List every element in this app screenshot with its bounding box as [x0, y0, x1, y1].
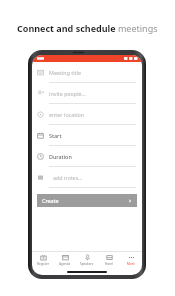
button[interactable]: add notes...: [32, 167, 142, 188]
staticText: Register: [37, 262, 49, 266]
staticText: Agenda: [59, 262, 71, 266]
staticText: enter location: [49, 111, 85, 118]
staticText: add notes...: [53, 174, 83, 181]
staticText: Start: [49, 132, 62, 139]
button[interactable]: Speakers: [76, 252, 98, 268]
staticText: Hotel: [105, 262, 113, 266]
button[interactable]: Start: [32, 125, 142, 146]
button[interactable]: Hotel: [98, 252, 120, 268]
staticText: More: [127, 262, 135, 266]
staticText: Create: [42, 197, 59, 204]
button[interactable]: Create: [37, 194, 137, 207]
staticText: Duration: [49, 153, 72, 160]
staticText: Connect and schedule meetings: [17, 22, 158, 34]
staticText: Speakers: [80, 262, 94, 266]
staticText: invite people...: [49, 90, 86, 97]
button[interactable]: More: [120, 252, 142, 268]
button[interactable]: Agenda: [54, 252, 76, 268]
button[interactable]: enter location: [32, 104, 142, 125]
button[interactable]: Duration: [32, 146, 142, 167]
button[interactable]: Register: [32, 252, 54, 268]
button[interactable]: invite people...: [32, 83, 142, 104]
button[interactable]: Meeting title: [32, 62, 142, 83]
staticText: Meeting title: [49, 69, 82, 76]
